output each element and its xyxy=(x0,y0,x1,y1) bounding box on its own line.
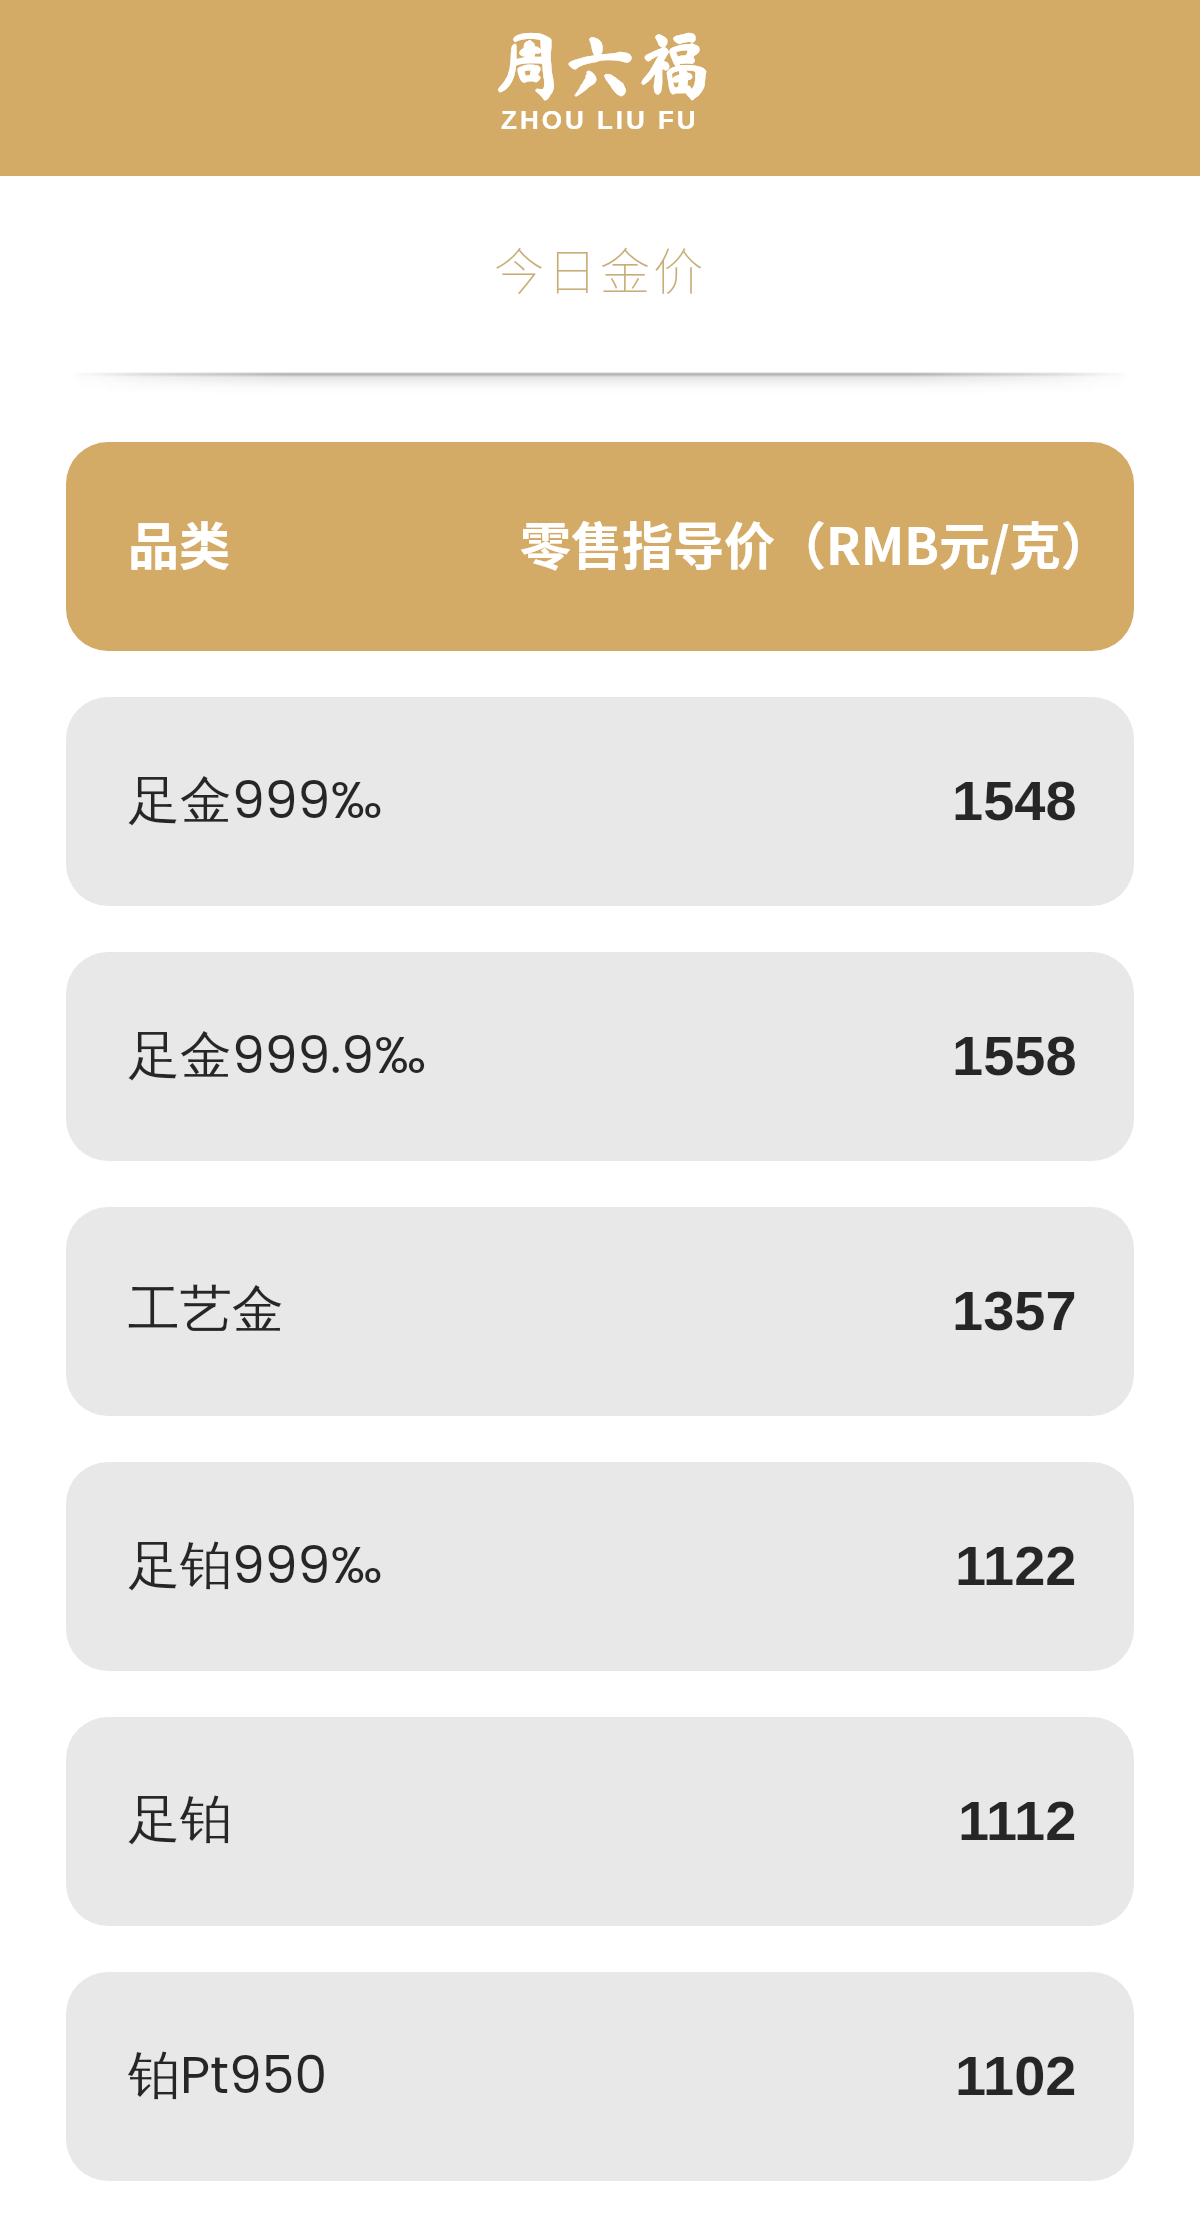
button[interactable]: 足铂 1112 xyxy=(66,1717,1134,1926)
staticText: 零售指导价（RMB元/克） xyxy=(520,506,1112,580)
staticText: 1357 xyxy=(952,1279,1077,1342)
staticText: 品类 xyxy=(128,506,231,580)
staticText: 1548 xyxy=(952,769,1077,832)
button[interactable]: 铂Pt950 1102 xyxy=(66,1972,1134,2181)
staticText: 工艺金 xyxy=(128,1277,284,1343)
staticText: 1112 xyxy=(958,1789,1077,1852)
staticText: 1558 xyxy=(952,1024,1077,1087)
staticText: 足铂999‰ xyxy=(128,1528,383,1601)
staticText: 周六福 xyxy=(488,28,710,102)
button[interactable]: 足金999‰ 1548 xyxy=(66,697,1134,906)
staticText: 足铂 xyxy=(128,1787,232,1853)
staticText: 周六福 xyxy=(489,27,711,101)
staticText: 足金999‰ xyxy=(128,763,383,836)
staticText: 1122 xyxy=(955,1534,1077,1597)
staticText: 1102 xyxy=(955,2044,1077,2107)
staticText: 铂Pt950 xyxy=(128,2038,328,2111)
staticText: ZHOU LIU FU xyxy=(501,105,699,134)
staticText: 周六福 xyxy=(489,29,711,103)
button[interactable]: 足铂999‰ 1122 xyxy=(66,1462,1134,1671)
staticText: 周六福 xyxy=(490,28,712,102)
button[interactable]: 品类 零售指导价（RMB元/克） xyxy=(66,442,1134,651)
button[interactable]: Zhou Liu Fu brand logo xyxy=(0,0,1200,176)
staticText: 周六福 xyxy=(489,28,711,102)
button[interactable]: 足金999.9‰ 1558 xyxy=(66,952,1134,1161)
staticText: 足金999.9‰ xyxy=(128,1018,427,1091)
button[interactable]: 工艺金 1357 xyxy=(66,1207,1134,1416)
staticText: 今日金价 xyxy=(494,232,706,304)
